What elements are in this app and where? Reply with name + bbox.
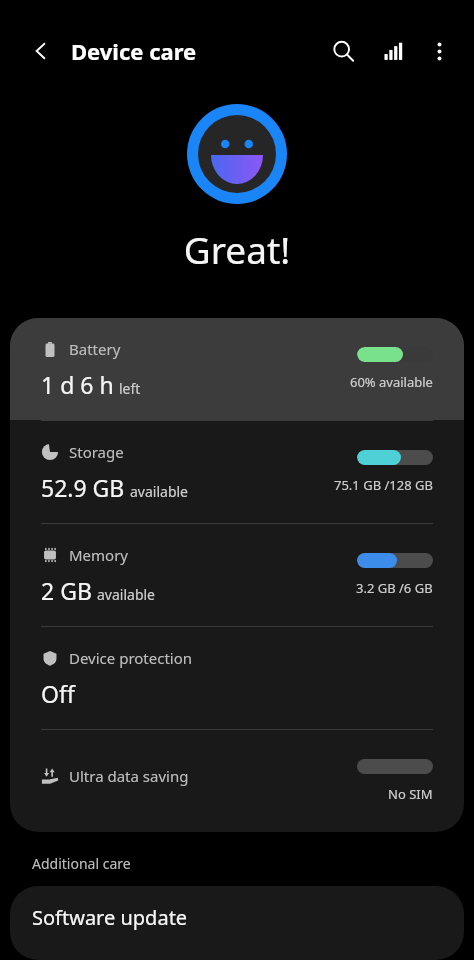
button[interactable]: Software update [10,886,464,960]
staticText: available [97,585,156,604]
button[interactable]: Memory [10,524,464,626]
button[interactable]: Device protection [10,627,464,729]
staticText: 75.1 GB /128 GB [334,476,433,494]
staticText: Storage [69,442,124,462]
staticText: Ultra data saving [69,766,189,786]
staticText: left [119,379,141,398]
staticText: 52.9 GB [41,472,125,503]
staticText: 3.2 GB /6 GB [356,579,433,597]
button[interactable]: Ultra data saving [10,730,464,832]
staticText: Additional care [32,854,131,873]
staticText: available [130,482,189,501]
button[interactable]: Storage [10,421,464,523]
staticText: Device protection [69,648,193,668]
staticText: Off [41,678,75,709]
button[interactable]: Search [320,28,366,74]
button[interactable]: More options [416,28,462,74]
staticText: 60% available [350,373,433,391]
staticText: 1 d 6 h [41,369,114,400]
button[interactable]: Usage statistics [370,28,416,74]
staticText: Software update [32,904,188,931]
staticText: Device care [71,36,197,66]
staticText: Memory [69,545,129,565]
button[interactable]: Back [20,30,62,72]
staticText: No SIM [388,785,433,803]
staticText: Battery [69,339,121,359]
staticText: Great! [0,224,474,274]
button[interactable]: Battery [10,318,464,420]
staticText: 2 GB [41,575,92,606]
